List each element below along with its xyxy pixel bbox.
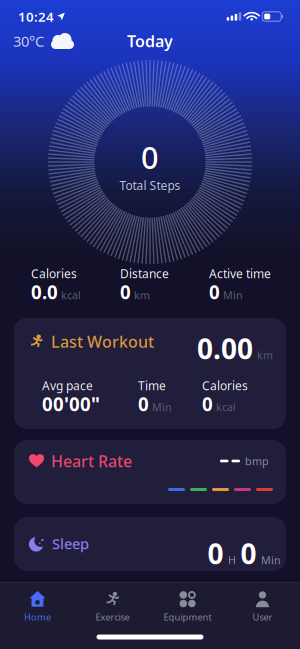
button[interactable]: Home — [0, 591, 75, 623]
staticText: 0.00 — [197, 330, 253, 367]
staticText: Sleep — [52, 534, 89, 553]
staticText: Distance — [120, 265, 169, 281]
button[interactable]: Sleep — [14, 517, 286, 571]
staticText: 0 — [207, 535, 223, 572]
staticText: 0 — [202, 392, 213, 416]
staticText: 0 — [209, 280, 220, 304]
staticText: 30°C — [13, 31, 44, 51]
staticText: Exercise — [95, 611, 129, 623]
staticText: Heart Rate — [51, 450, 132, 472]
staticText: Active time — [209, 265, 271, 281]
staticText: Time — [138, 377, 166, 393]
staticText: 0.0 — [31, 280, 58, 304]
staticText: User — [252, 611, 272, 623]
staticText: 0 — [120, 280, 131, 304]
staticText: km — [257, 348, 273, 362]
staticText: kcal — [216, 400, 236, 414]
staticText: Min — [261, 553, 281, 567]
staticText: Equipment — [163, 611, 211, 623]
staticText: Today — [127, 30, 173, 52]
staticText: 00'00" — [42, 392, 100, 416]
staticText: Min — [223, 288, 243, 302]
staticText: bmp — [245, 454, 269, 468]
staticText: 0 — [141, 137, 159, 177]
button[interactable]: Equipment — [150, 591, 225, 623]
button[interactable]: Last Workout — [14, 318, 286, 429]
staticText: kcal — [61, 288, 81, 302]
staticText: Total Steps — [119, 177, 180, 193]
staticText: H — [228, 553, 236, 567]
staticText: Last Workout — [51, 331, 154, 352]
staticText: 0 — [240, 535, 256, 572]
staticText: 0 — [138, 392, 149, 416]
staticText: Min — [152, 400, 172, 414]
staticText: Avg pace — [42, 377, 93, 393]
button[interactable]: Heart Rate — [14, 440, 286, 504]
button[interactable]: User — [225, 591, 300, 623]
button[interactable]: Exercise — [75, 591, 150, 623]
staticText: 10:24 — [18, 8, 54, 25]
staticText: Calories — [31, 265, 77, 281]
staticText: Home — [24, 611, 51, 623]
staticText: km — [134, 288, 150, 302]
staticText: Calories — [202, 377, 248, 393]
